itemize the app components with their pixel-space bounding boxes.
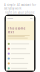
button[interactable] xyxy=(6,61,34,66)
staticText: right on your phone xyxy=(5,11,35,14)
staticText: A simple AI assistant for everyday work xyxy=(4,3,36,10)
staticText: This is some text xyxy=(8,27,26,34)
button[interactable] xyxy=(6,56,34,61)
button[interactable] xyxy=(6,51,34,56)
button[interactable] xyxy=(6,66,34,71)
button[interactable] xyxy=(6,41,34,46)
button[interactable] xyxy=(6,46,34,51)
